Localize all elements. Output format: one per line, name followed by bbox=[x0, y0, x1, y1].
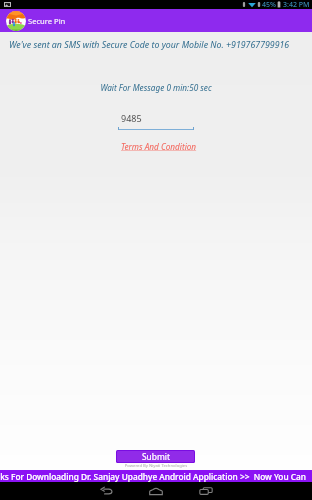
staticText: nks For Downloading Dr. Sanjay Upadhye A… bbox=[0, 471, 307, 482]
button[interactable]: Recent apps bbox=[186, 482, 226, 500]
staticText: 9485 bbox=[121, 112, 142, 124]
staticText: Powered By Niyati Technologies bbox=[0, 463, 312, 469]
button[interactable]: Secure Pin bbox=[0, 9, 312, 32]
button[interactable]: News ticker bbox=[0, 470, 312, 482]
staticText: Secure Pin bbox=[28, 16, 66, 26]
staticText: Wait For Message 0 min:50 sec bbox=[0, 82, 312, 93]
button[interactable]: Submit bbox=[117, 451, 194, 462]
button[interactable]: Home bbox=[136, 482, 176, 500]
staticText: 3:42 PM bbox=[283, 0, 310, 9]
button[interactable]: Back bbox=[86, 482, 126, 500]
staticText: We've sent an SMS with Secure Code to yo… bbox=[9, 39, 290, 51]
staticText: Submit bbox=[142, 451, 170, 462]
staticText: 45% bbox=[262, 0, 276, 9]
button[interactable]: Terms And Condition bbox=[121, 141, 197, 152]
